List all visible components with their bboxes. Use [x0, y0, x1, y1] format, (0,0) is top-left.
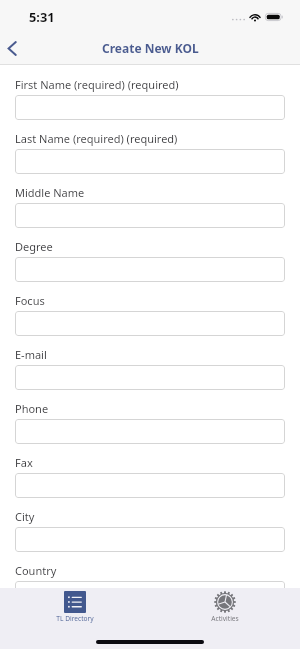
staticText: City [15, 509, 35, 524]
button[interactable]: City [15, 527, 285, 552]
staticText: Focus [15, 293, 45, 308]
staticText: Fax [15, 455, 33, 470]
button[interactable]: Focus [15, 311, 285, 336]
button[interactable]: First Name (required) (required) [15, 95, 285, 120]
button[interactable]: Back [0, 32, 28, 64]
staticText: First Name (required) (required) [15, 77, 179, 92]
button[interactable]: Last Name (required) (required) [15, 149, 285, 174]
staticText: 5:31 [29, 8, 55, 25]
staticText: E-mail [15, 347, 47, 362]
staticText: TL Directory [56, 614, 94, 623]
staticText: Country [15, 563, 57, 578]
button[interactable]: Country [15, 581, 285, 588]
button[interactable]: Fax [15, 473, 285, 498]
staticText: Create New KOL [102, 40, 199, 56]
button[interactable]: Activities [150, 588, 300, 623]
staticText: Middle Name [15, 185, 85, 200]
staticText: Activities [211, 614, 239, 623]
staticText: Degree [15, 239, 53, 254]
button[interactable]: TL Directory [0, 588, 150, 623]
staticText: Last Name (required) (required) [15, 131, 178, 146]
button[interactable]: E-mail [15, 365, 285, 390]
button[interactable]: Phone [15, 419, 285, 444]
button[interactable]: Middle Name [15, 203, 285, 228]
staticText: Phone [15, 401, 49, 416]
button[interactable]: Degree [15, 257, 285, 282]
